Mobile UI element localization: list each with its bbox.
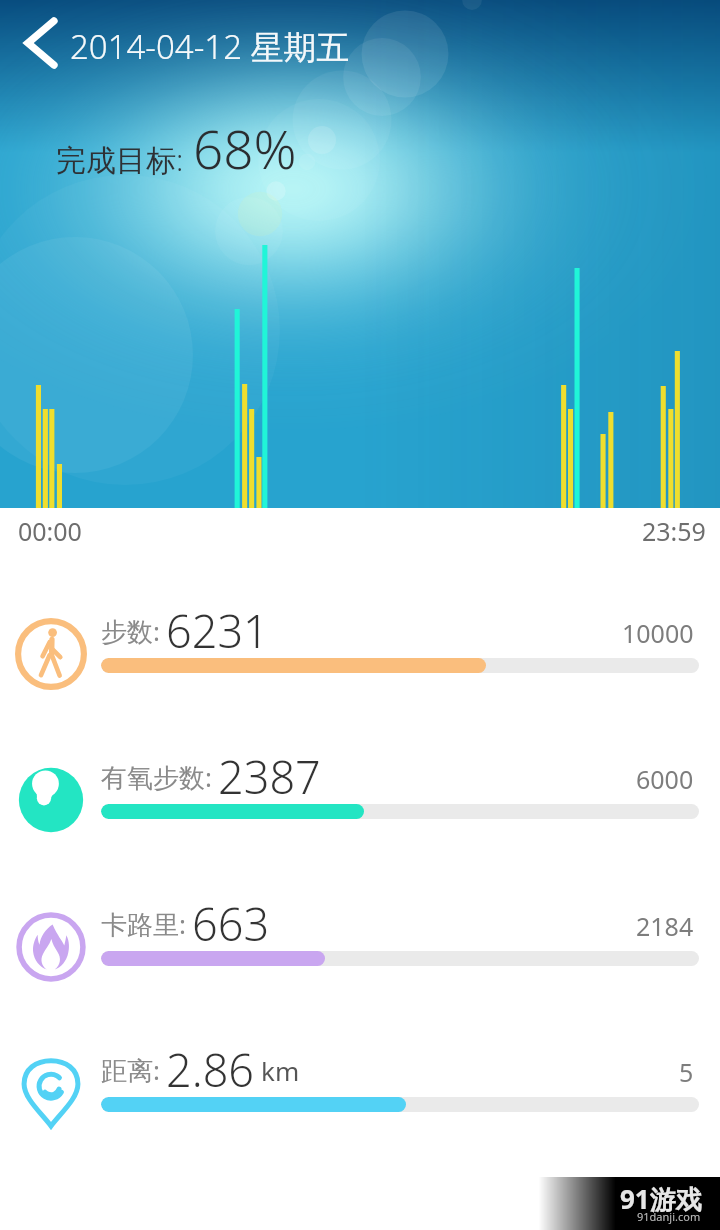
button[interactable]: 距离: [0, 1039, 720, 1143]
staticText: 10000 [622, 616, 694, 650]
staticText: 5 [679, 1055, 694, 1089]
staticText: 663 [192, 893, 270, 949]
staticText: 91danji.com [637, 1209, 701, 1224]
button[interactable]: 有氧步数: [0, 746, 720, 850]
staticText: 6231 [166, 600, 269, 656]
staticText: 卡路里: [101, 906, 186, 942]
staticText: 00:00 [18, 514, 82, 548]
button[interactable]: Back [10, 12, 72, 74]
staticText: 2387 [218, 746, 321, 802]
button[interactable]: 步数: [0, 600, 720, 704]
staticText: 有氧步数: [101, 759, 212, 795]
staticText: 2184 [636, 909, 694, 943]
staticText: 2.86 [166, 1039, 255, 1095]
staticText: 距离: [101, 1052, 160, 1088]
staticText: 68% [193, 112, 297, 184]
staticText: 23:59 [642, 514, 706, 548]
staticText: 6000 [636, 762, 694, 796]
staticText: 91游戏 [620, 1181, 702, 1217]
staticText: 步数: [101, 613, 160, 649]
button[interactable]: 卡路里: [0, 893, 720, 997]
staticText: 完成目标: [56, 139, 184, 180]
staticText: 2014-04-12 星期五 [70, 24, 350, 69]
staticText: km [261, 1053, 300, 1088]
